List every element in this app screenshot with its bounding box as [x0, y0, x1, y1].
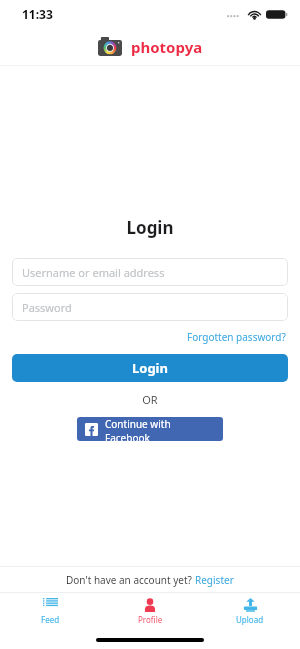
staticText: Profile — [138, 614, 163, 625]
staticText: Register — [195, 573, 234, 587]
button[interactable]: Upload — [200, 598, 300, 625]
staticText: Upload — [236, 614, 264, 625]
staticText: OR — [12, 392, 288, 407]
button[interactable]: Register — [195, 573, 234, 587]
staticText: Login — [12, 216, 288, 239]
staticText: photopya — [131, 37, 203, 57]
button[interactable]: Continue with Facebook — [77, 417, 223, 441]
button[interactable]: Username or email address — [12, 258, 288, 286]
staticText: Username or email address — [22, 265, 165, 280]
staticText: Password — [22, 300, 72, 315]
staticText: Feed — [41, 614, 60, 625]
button[interactable]: Password — [12, 293, 288, 321]
staticText: Continue with Facebook — [105, 417, 215, 441]
button[interactable]: Forgotten password? — [185, 328, 288, 346]
staticText: 11:33 — [22, 6, 53, 22]
staticText: Forgotten password? — [187, 330, 286, 344]
staticText: Login — [132, 359, 168, 377]
button[interactable]: Profile — [100, 598, 200, 625]
button[interactable]: Feed — [0, 598, 100, 625]
button[interactable]: Login — [12, 354, 288, 382]
staticText: Don't have an account yet? — [66, 573, 195, 587]
